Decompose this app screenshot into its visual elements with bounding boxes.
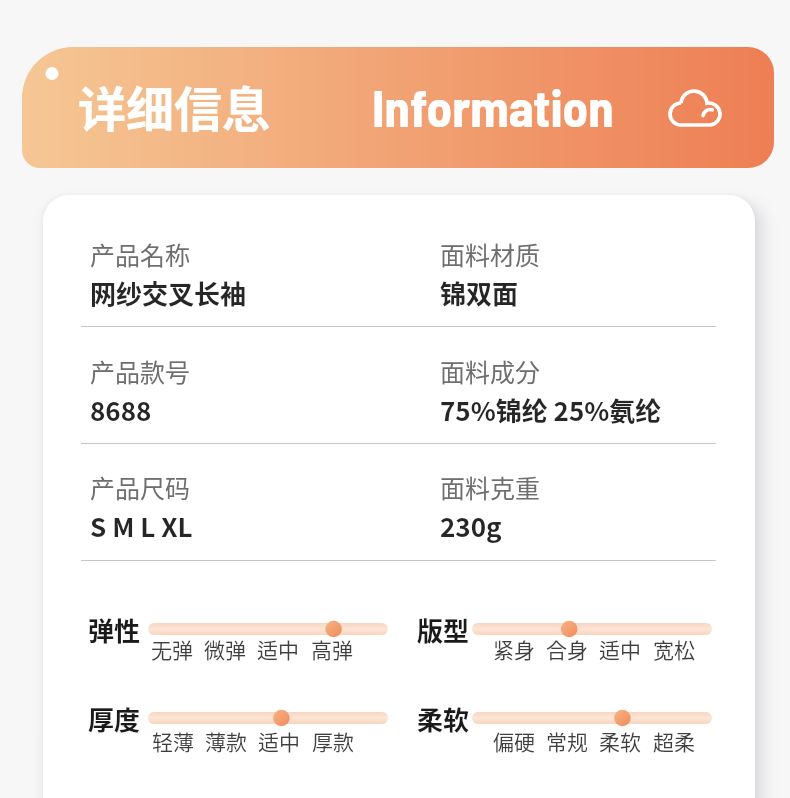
button[interactable]: 产品款号 <box>90 353 191 389</box>
button[interactable]: 面料材质 <box>440 236 541 272</box>
staticText: 锦双面 <box>440 274 519 312</box>
button[interactable]: 8688 <box>90 391 152 429</box>
staticText: 网纱交叉长袖 <box>90 274 247 312</box>
staticText: 厚度 <box>88 700 141 738</box>
staticText: 微弹 <box>195 634 255 664</box>
button[interactable]: 面料成分 <box>440 353 541 389</box>
button[interactable]: 版型 <box>417 607 712 667</box>
staticText: 面料克重 <box>440 469 541 505</box>
button[interactable]: 柔软 <box>417 696 712 756</box>
staticText: 常规 <box>537 726 597 756</box>
staticText: 产品款号 <box>90 353 191 389</box>
button[interactable]: 厚度 <box>88 696 388 756</box>
staticText: 面料成分 <box>440 353 541 389</box>
staticText: S M L XL <box>90 507 193 545</box>
staticText: 产品尺码 <box>90 469 191 505</box>
staticText: 无弹 <box>142 634 202 664</box>
staticText: 详细信息 <box>78 71 271 141</box>
staticText: 厚款 <box>303 726 363 756</box>
button[interactable]: 产品名称 <box>90 236 191 272</box>
staticText: 紧身 <box>484 634 544 664</box>
staticText: 柔软 <box>417 700 470 738</box>
staticText: 产品名称 <box>90 236 191 272</box>
staticText: 适中 <box>249 726 309 756</box>
staticText: 柔软 <box>590 726 650 756</box>
button[interactable]: 锦双面 <box>440 274 519 312</box>
staticText: 薄款 <box>196 726 256 756</box>
button[interactable]: 75%锦纶 25%氨纶 <box>440 391 662 429</box>
button[interactable]: 230g <box>440 507 502 545</box>
staticText: 面料材质 <box>440 236 541 272</box>
staticText: Information <box>372 76 614 137</box>
staticText: 8688 <box>90 391 152 429</box>
staticText: 合身 <box>537 634 597 664</box>
button[interactable]: 网纱交叉长袖 <box>90 274 247 312</box>
button[interactable]: Cloud sync <box>662 85 730 133</box>
staticText: 轻薄 <box>143 726 203 756</box>
button[interactable]: 面料克重 <box>440 469 541 505</box>
button[interactable]: 弹性 <box>88 607 388 667</box>
staticText: 230g <box>440 507 502 545</box>
button[interactable]: 详细信息 <box>22 47 774 168</box>
button[interactable]: 产品尺码 <box>90 469 191 505</box>
staticText: 适中 <box>248 634 308 664</box>
staticText: 适中 <box>590 634 650 664</box>
staticText: 弹性 <box>88 611 141 649</box>
button[interactable]: S M L XL <box>90 507 193 545</box>
staticText: 超柔 <box>644 726 704 756</box>
staticText: 宽松 <box>644 634 704 664</box>
staticText: 75%锦纶 25%氨纶 <box>440 391 662 429</box>
staticText: 高弹 <box>302 634 362 664</box>
staticText: 版型 <box>417 611 470 649</box>
staticText: 偏硬 <box>484 726 544 756</box>
